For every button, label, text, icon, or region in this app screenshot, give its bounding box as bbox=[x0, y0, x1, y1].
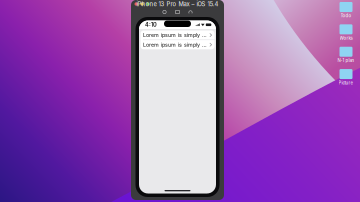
staticText: Lorem ipsum is simply dummy bbox=[143, 32, 209, 38]
staticText: Picture bbox=[338, 80, 353, 85]
button[interactable]: Lorem ipsum is simply dummy bbox=[140, 40, 214, 49]
staticText: Works bbox=[339, 36, 352, 41]
button[interactable]: Lorem ipsum is simply dummy bbox=[140, 30, 214, 40]
button[interactable]: Works bbox=[336, 24, 356, 41]
button[interactable]: Rotate bbox=[187, 9, 193, 15]
staticText: Todo bbox=[340, 13, 351, 18]
button[interactable]: Screenshot bbox=[174, 9, 180, 15]
button[interactable]: Todo bbox=[336, 2, 356, 18]
button[interactable]: Picture bbox=[336, 69, 356, 85]
button[interactable]: Home bbox=[161, 9, 167, 15]
button[interactable]: N-1 plan bbox=[336, 47, 356, 63]
staticText: Lorem ipsum is simply dummy bbox=[143, 41, 209, 48]
staticText: N-1 plan bbox=[337, 58, 354, 63]
staticText: iPhone 13 Pro Max – iOS 15.4 bbox=[136, 0, 218, 8]
staticText: 4:10 bbox=[145, 21, 157, 28]
